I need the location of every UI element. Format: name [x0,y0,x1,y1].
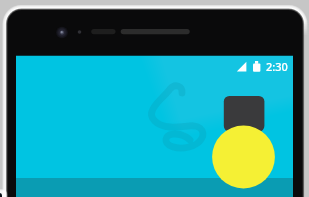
button[interactable]: Add [212,126,275,189]
staticText: 2:30 [266,59,288,74]
